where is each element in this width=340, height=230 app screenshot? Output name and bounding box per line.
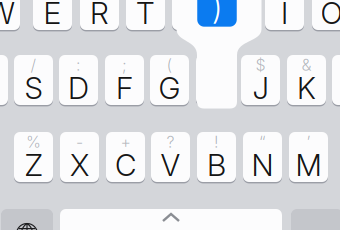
button[interactable]: 8 — [262, 0, 307, 33]
staticText: M — [295, 147, 321, 183]
button[interactable]: & — [284, 52, 329, 108]
staticText: O — [320, 0, 340, 31]
staticText: W — [0, 0, 14, 31]
button[interactable]: 5 — [123, 0, 168, 33]
staticText: % — [26, 132, 41, 152]
staticText: K — [297, 70, 316, 106]
button[interactable]: ; — [102, 52, 147, 108]
button[interactable]: 2 — [0, 0, 23, 33]
button[interactable]: ) — [193, 52, 238, 108]
button[interactable]: ’ — [286, 129, 331, 185]
button[interactable]: ! — [194, 129, 239, 185]
button[interactable]: ” — [329, 52, 340, 108]
button[interactable]: 7 — [216, 0, 261, 33]
staticText: + — [120, 132, 130, 152]
staticText: S — [24, 70, 42, 106]
button[interactable]: return — [288, 206, 340, 230]
staticText: - — [76, 132, 83, 152]
button[interactable]: + — [103, 129, 148, 185]
button[interactable]: ( — [147, 52, 192, 108]
staticText: N — [251, 147, 273, 183]
staticText: Y — [182, 0, 201, 31]
button[interactable]: space — [57, 206, 285, 230]
button[interactable]: ? — [148, 129, 193, 185]
staticText: C — [115, 147, 136, 183]
staticText: J — [252, 70, 268, 106]
staticText: ( — [166, 55, 172, 75]
staticText: ? — [166, 132, 174, 152]
staticText: D — [68, 70, 89, 106]
staticText: V — [160, 147, 180, 183]
staticText: F — [116, 70, 133, 106]
button[interactable]: $ — [238, 52, 283, 108]
staticText: ’ — [306, 132, 310, 152]
staticText: T — [136, 0, 155, 31]
button[interactable]: 9 — [309, 0, 340, 33]
button[interactable]: 4 — [77, 0, 122, 33]
staticText: ) — [212, 0, 222, 27]
staticText: ! — [214, 132, 219, 152]
button[interactable]: “ — [240, 129, 285, 185]
staticText: ; — [122, 55, 127, 75]
staticText: Z — [24, 147, 42, 183]
button[interactable]: # — [0, 52, 11, 108]
staticText: U — [228, 0, 249, 31]
staticText: E — [43, 0, 61, 31]
button[interactable]: 3 — [30, 0, 75, 33]
staticText: R — [90, 0, 109, 31]
button[interactable]: 6 — [169, 0, 214, 33]
staticText: / — [30, 55, 36, 75]
staticText: B — [207, 147, 226, 183]
staticText: & — [301, 55, 311, 75]
button[interactable]: Next keyboard — [0, 206, 56, 230]
button[interactable]: % — [11, 129, 56, 185]
staticText: $ — [255, 55, 265, 75]
staticText: I — [281, 0, 288, 31]
button[interactable]: : — [56, 52, 101, 108]
staticText: X — [70, 147, 89, 183]
staticText: G — [158, 70, 180, 106]
button[interactable]: - — [57, 129, 102, 185]
staticText: “ — [259, 132, 266, 152]
staticText: : — [76, 55, 81, 75]
button[interactable]: / — [11, 52, 56, 108]
